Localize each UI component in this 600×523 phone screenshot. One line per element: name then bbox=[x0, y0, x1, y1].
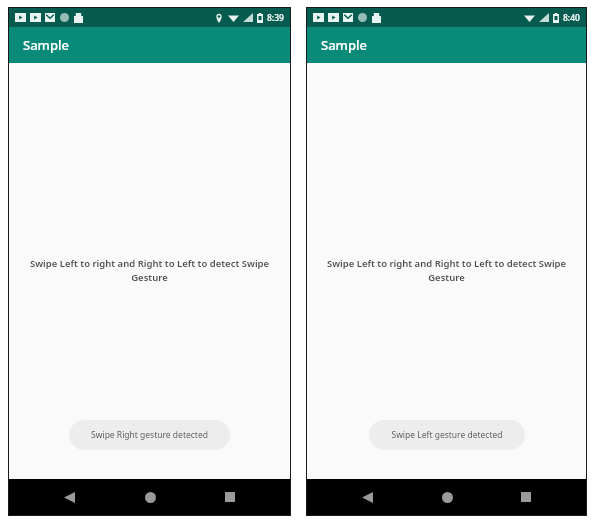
staticText: Sample bbox=[23, 36, 69, 54]
staticText: 8:39 bbox=[267, 12, 284, 24]
staticText: Swipe Left gesture detected bbox=[391, 429, 503, 441]
button[interactable]: Back bbox=[49, 479, 89, 515]
button[interactable]: Back bbox=[347, 479, 387, 515]
button[interactable]: Recent apps bbox=[210, 479, 250, 515]
staticText: Swipe Left to right and Right to Left to… bbox=[25, 257, 274, 284]
button[interactable]: Home bbox=[130, 479, 170, 515]
staticText: Swipe Right gesture detected bbox=[91, 429, 208, 441]
staticText: Swipe Left to right and Right to Left to… bbox=[323, 257, 570, 284]
staticText: Sample bbox=[321, 36, 367, 54]
staticText: 8:40 bbox=[563, 12, 580, 24]
button[interactable]: Swipe Left gesture detected bbox=[369, 420, 525, 450]
button[interactable]: Home bbox=[427, 479, 467, 515]
button[interactable]: Recent apps bbox=[506, 479, 546, 515]
button[interactable]: Swipe Right gesture detected bbox=[69, 420, 230, 450]
